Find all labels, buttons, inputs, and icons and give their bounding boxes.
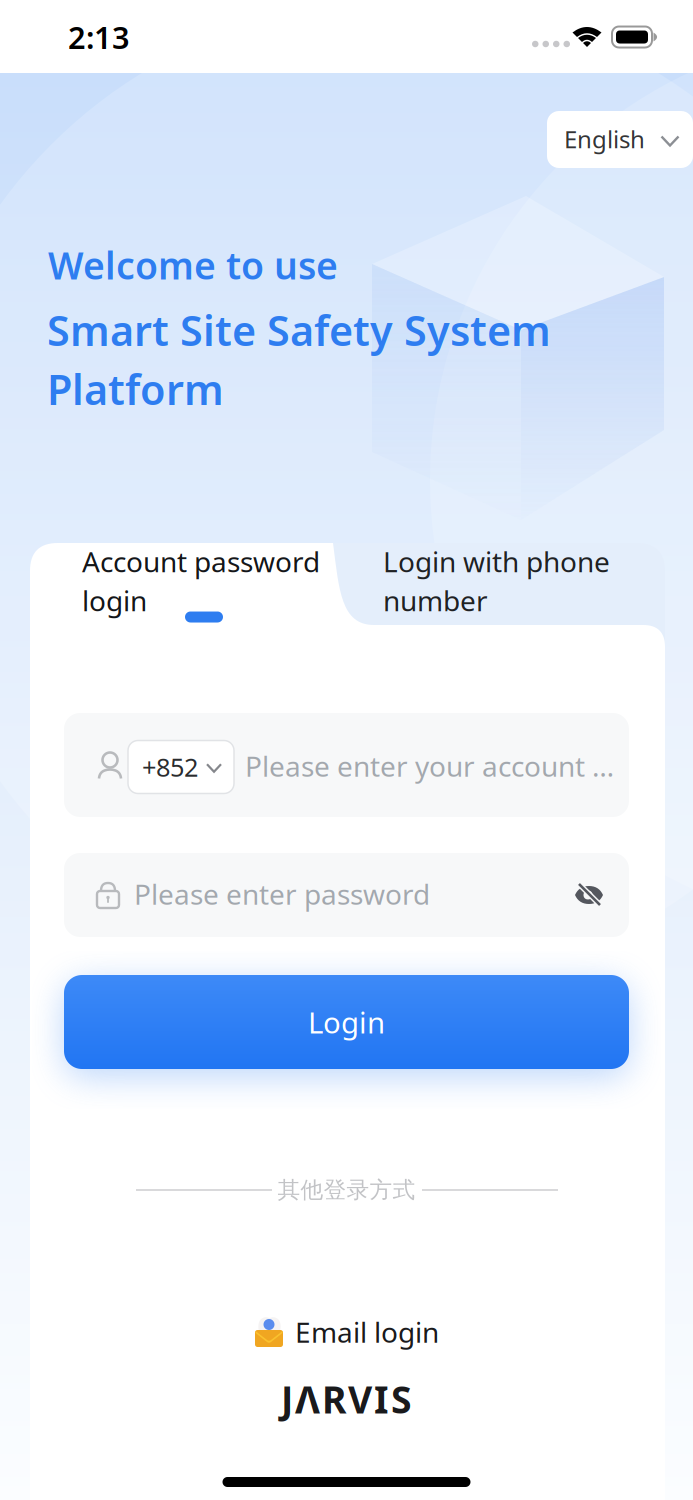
- button[interactable]: Email login: [254, 1313, 439, 1351]
- staticText: Please enter password: [134, 875, 430, 913]
- staticText: +852: [142, 750, 198, 784]
- staticText: 2:13: [68, 17, 130, 57]
- staticText: Login: [308, 1002, 385, 1041]
- staticText: JΛRVIS: [281, 1374, 412, 1424]
- staticText: Email login: [295, 1313, 439, 1351]
- button[interactable]: English: [547, 111, 693, 168]
- staticText: number: [383, 582, 488, 619]
- staticText: Platform: [47, 362, 224, 416]
- button[interactable]: Show password: [575, 884, 603, 906]
- staticText: Login with phone: [383, 543, 610, 580]
- staticText: login: [82, 582, 147, 619]
- staticText: Welcome to use: [48, 240, 338, 290]
- staticText: Smart Site Safety System: [47, 303, 551, 357]
- button[interactable]: Account password: [82, 544, 332, 626]
- button[interactable]: Country code +852: [128, 740, 234, 793]
- button[interactable]: Login with phone: [383, 544, 643, 626]
- staticText: Account password: [82, 543, 320, 580]
- staticText: 其他登录方式: [277, 1176, 415, 1204]
- button[interactable]: Login: [64, 975, 629, 1069]
- staticText: Please enter your account num: [245, 747, 617, 785]
- staticText: English: [564, 123, 645, 155]
